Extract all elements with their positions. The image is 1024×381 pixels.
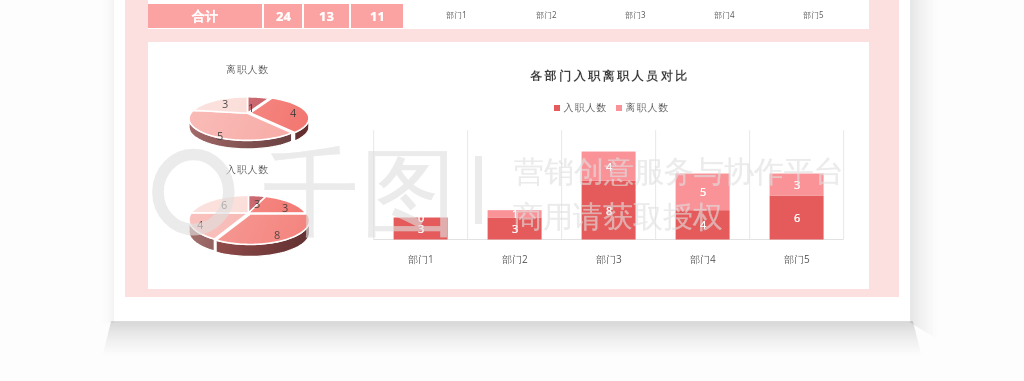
- staticText: 6: [221, 197, 228, 212]
- button[interactable]: 部门4: [656, 250, 750, 268]
- staticText: 3: [254, 196, 261, 211]
- staticText: 部门1: [446, 9, 467, 20]
- staticText: 部门1: [408, 252, 434, 266]
- button[interactable]: 部门3: [562, 250, 656, 268]
- staticText: 11: [370, 7, 385, 25]
- staticText: 各部门入职离职人员对比: [530, 68, 690, 83]
- staticText: 入职人数: [226, 163, 270, 176]
- staticText: 8: [606, 203, 613, 218]
- staticText: 部门2: [502, 252, 528, 266]
- staticText: 3: [282, 200, 289, 215]
- staticText: 8: [274, 227, 281, 242]
- staticText: 6: [794, 210, 801, 225]
- button[interactable]: 部门5: [769, 0, 858, 29]
- staticText: 离职人数: [625, 101, 669, 114]
- staticText: 部门5: [784, 252, 810, 266]
- staticText: 部门4: [714, 9, 735, 20]
- staticText: 3: [512, 221, 519, 236]
- staticText: 3: [418, 221, 425, 236]
- staticText: 5: [217, 128, 224, 143]
- staticText: 5: [700, 184, 707, 199]
- staticText: 4: [197, 217, 204, 232]
- staticText: 千: [263, 134, 359, 255]
- button[interactable]: 13: [304, 4, 349, 28]
- staticText: 1: [512, 206, 519, 221]
- staticText: 商用请获取授权: [513, 198, 723, 236]
- staticText: 部门3: [625, 9, 646, 20]
- staticText: 13: [319, 7, 334, 25]
- staticText: 营销创意服务与协作平台: [514, 153, 844, 191]
- staticText: 4: [700, 217, 707, 232]
- button[interactable]: 部门1: [411, 0, 501, 29]
- staticText: 3: [222, 96, 229, 111]
- staticText: 部门2: [536, 9, 557, 20]
- button[interactable]: 部门4: [680, 0, 769, 29]
- button[interactable]: 合计: [148, 4, 262, 28]
- staticText: 图: [361, 134, 457, 255]
- staticText: 3: [794, 177, 801, 192]
- staticText: 入职人数: [563, 101, 607, 114]
- staticText: 24: [276, 7, 291, 25]
- staticText: 4: [606, 159, 613, 174]
- button[interactable]: 11: [351, 4, 403, 28]
- button[interactable]: 部门1: [374, 250, 468, 268]
- button[interactable]: 部门2: [468, 250, 562, 268]
- staticText: 4: [290, 105, 297, 120]
- button[interactable]: 部门2: [501, 0, 591, 29]
- button[interactable]: 部门5: [750, 250, 844, 268]
- button[interactable]: 部门3: [591, 0, 680, 29]
- staticText: 离职人数: [226, 63, 270, 76]
- button[interactable]: 24: [264, 4, 302, 28]
- staticText: 0: [418, 210, 425, 225]
- staticText: 合计: [192, 8, 218, 24]
- staticText: 部门4: [690, 252, 716, 266]
- staticText: 部门3: [596, 252, 622, 266]
- staticText: 部门5: [803, 9, 824, 20]
- staticText: 1: [248, 100, 255, 115]
